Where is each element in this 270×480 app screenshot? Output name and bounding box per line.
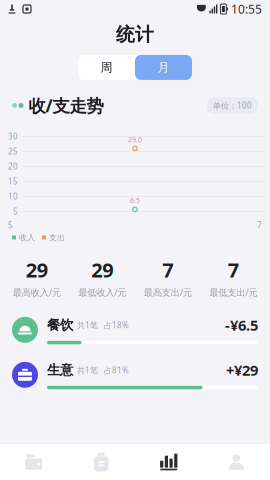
staticText: 最低支出/元 — [209, 286, 257, 298]
button[interactable]: 周 — [78, 55, 135, 80]
button[interactable]: 餐饮 — [0, 310, 270, 349]
button[interactable]: 生意 — [0, 355, 270, 394]
staticText: 收/支走势 — [28, 94, 103, 117]
staticText: 共1笔 — [73, 365, 98, 375]
staticText: 7 — [257, 220, 262, 230]
staticText: 5 — [13, 206, 18, 217]
staticText: 30 — [8, 131, 18, 142]
button[interactable]: 钱包 — [0, 444, 67, 480]
button[interactable]: 月 — [135, 55, 192, 80]
staticText: 月 — [157, 60, 169, 75]
staticText: 7 — [228, 256, 239, 283]
staticText: 6.5 — [130, 196, 140, 205]
staticText: 29 — [91, 256, 113, 283]
staticText: 15 — [8, 176, 18, 187]
staticText: -¥6.5 — [225, 315, 258, 335]
staticText: 占81% — [98, 365, 129, 375]
staticText: 单位：100 — [213, 100, 252, 111]
staticText: 20 — [8, 161, 18, 172]
staticText: 生意 — [47, 362, 73, 378]
staticText: 29 — [26, 256, 48, 283]
staticText: 7 — [162, 256, 173, 283]
button[interactable]: 账单 — [67, 444, 135, 480]
staticText: 最低收入/元 — [78, 286, 126, 298]
staticText: 5 — [8, 220, 13, 230]
staticText: 最高收入/元 — [13, 286, 61, 298]
staticText: +¥29 — [226, 360, 258, 380]
staticText: 支出 — [49, 233, 65, 242]
staticText: 29.0 — [128, 135, 142, 144]
staticText: 10:55 — [231, 1, 262, 17]
staticText: 共1笔 — [73, 320, 98, 330]
staticText: 收入 — [19, 233, 35, 242]
staticText: 25 — [8, 146, 18, 157]
staticText: 统计 — [116, 23, 154, 46]
staticText: 10 — [8, 191, 18, 202]
staticText: 占18% — [98, 320, 129, 330]
button[interactable]: 统计 — [135, 444, 202, 480]
staticText: 最高支出/元 — [144, 286, 192, 298]
button[interactable]: 我的 — [202, 444, 270, 480]
staticText: 餐饮 — [47, 317, 73, 333]
staticText: 周 — [100, 60, 112, 75]
